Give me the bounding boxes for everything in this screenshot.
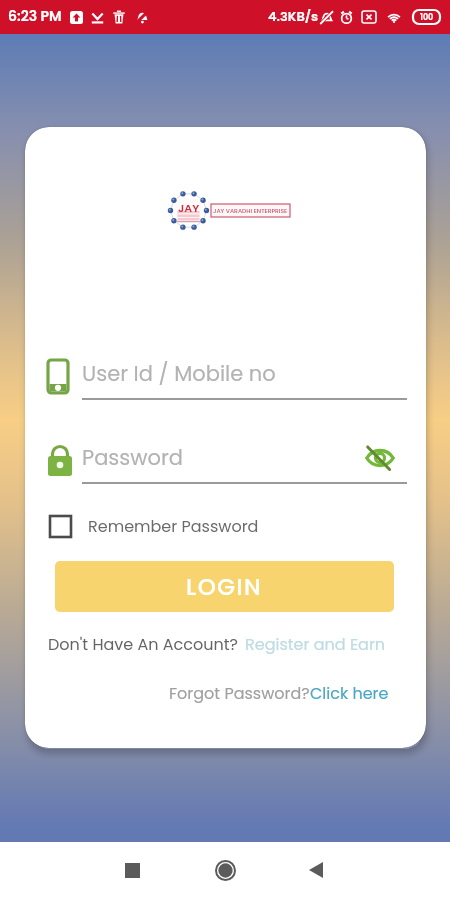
staticText: Don't Have An Account? <box>48 633 238 655</box>
button[interactable]: Toggle password visibility <box>364 442 396 474</box>
button[interactable]: LOGIN <box>55 561 394 612</box>
button[interactable]: Recent apps <box>107 842 157 900</box>
staticText: Forgot Password? <box>169 682 310 704</box>
button[interactable]: Click here <box>310 682 389 704</box>
button[interactable]: Back <box>291 842 341 900</box>
staticText: Click here <box>310 682 389 704</box>
staticText: Remember Password <box>88 515 259 537</box>
staticText: 4.3KB/s <box>268 7 319 25</box>
staticText: User Id / Mobile no <box>82 359 276 388</box>
staticText: 6:23 PM <box>8 6 62 26</box>
staticText: Register and Earn <box>245 633 386 655</box>
staticText: LOGIN <box>186 571 263 603</box>
button[interactable]: Register and Earn <box>245 633 386 655</box>
staticText: JAY VARADHI ENTERPRISE <box>213 207 288 215</box>
button[interactable]: Home <box>200 842 250 900</box>
staticText: Password <box>82 443 183 472</box>
staticText: JAY <box>178 200 200 213</box>
button[interactable]: Remember Password <box>47 512 262 540</box>
staticText: 100 <box>420 12 434 23</box>
